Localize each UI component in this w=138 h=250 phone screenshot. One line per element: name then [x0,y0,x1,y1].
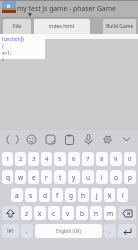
staticText: c [52,209,56,218]
staticText: 0 [128,155,132,163]
button[interactable]: !#1 [2,224,19,238]
button[interactable]: 3 [28,152,39,166]
staticText: 2 [19,155,23,163]
button[interactable]: g [65,188,76,202]
button[interactable]: 9 [110,152,122,166]
staticText: g [69,191,73,200]
button[interactable]: a [11,188,23,202]
button[interactable] [100,132,114,146]
staticText: o [114,173,118,182]
staticText: my test js game - phaser Game [17,4,116,13]
button[interactable]: 4 [41,152,52,166]
button[interactable] [119,132,133,146]
staticText: 6 [72,155,76,163]
staticText: v [66,209,70,218]
button[interactable]: l [117,188,128,202]
staticText: File [13,23,21,30]
staticText: z [25,209,29,218]
button[interactable]: q [2,170,13,184]
button[interactable]: h [78,188,89,202]
staticText: !#1 [7,228,14,234]
button[interactable]: p [124,170,136,184]
staticText: d [43,191,47,200]
button[interactable]: r [41,170,52,184]
staticText: i [101,173,103,182]
staticText: 3 [32,155,36,163]
staticText: } [2,57,4,61]
staticText: f [56,191,59,200]
button[interactable] [2,206,19,220]
button[interactable]: s [25,188,37,202]
staticText: x [38,209,42,218]
button[interactable] [118,206,136,220]
button[interactable]: j [91,188,102,202]
staticText: n [94,209,99,218]
staticText: 1 [6,155,10,163]
button[interactable]: 6 [68,152,80,166]
staticText: 4 [45,155,49,163]
staticText: q [6,173,10,182]
staticText: k [108,191,112,200]
button[interactable]: w [15,170,26,184]
staticText: index.html [49,23,75,30]
button[interactable] [81,132,95,146]
staticText: 8 [100,155,104,163]
staticText: { [2,43,4,50]
staticText: j [96,191,98,200]
staticText: 5 [58,155,62,163]
button[interactable]: English (UK) [35,224,102,238]
button[interactable]: 1 [2,152,13,166]
button[interactable]: 8 [96,152,108,166]
button[interactable]: c [48,206,60,220]
button[interactable]: t [54,170,66,184]
staticText: y [72,173,76,182]
staticText: 7 [86,155,90,163]
staticText: a [15,191,19,200]
button[interactable]: . [104,224,116,238]
button[interactable]: u [82,170,94,184]
button[interactable]: Build Game [103,19,136,34]
staticText: b [80,209,84,218]
button[interactable] [118,224,136,238]
button[interactable]: o [110,170,122,184]
button[interactable]: d [39,188,50,202]
button[interactable]: x [34,206,46,220]
staticText: w [18,173,24,182]
button[interactable]: 7 [82,152,94,166]
button[interactable] [24,132,38,146]
staticText: , [26,227,28,235]
button[interactable]: b [76,206,88,220]
button[interactable]: z [21,206,32,220]
button[interactable]: n [90,206,102,220]
staticText: m [107,209,114,218]
staticText: function() [2,36,24,43]
button[interactable] [5,132,19,146]
button[interactable]: m [104,206,116,220]
staticText: u [86,173,91,182]
staticText: x=1; [2,50,12,57]
staticText: Build Game [106,23,134,30]
button[interactable]: f [52,188,63,202]
button[interactable]: i [96,170,108,184]
button[interactable]: 5 [54,152,66,166]
staticText: h [81,191,86,200]
button[interactable]: y [68,170,80,184]
staticText: p [128,173,132,182]
staticText: r [45,173,48,182]
button[interactable]: e [28,170,39,184]
button[interactable] [43,132,57,146]
button[interactable]: index.html [34,19,90,34]
button[interactable]: 2 [15,152,26,166]
button[interactable]: File [3,19,31,34]
staticText: English (UK) [56,228,82,234]
staticText: s [29,191,33,200]
staticText: l [122,191,124,200]
staticText: 9 [114,155,118,163]
button[interactable]: v [62,206,74,220]
button[interactable]: function() [0,34,45,59]
button[interactable] [62,132,76,146]
button[interactable]: , [21,224,33,238]
button[interactable]: 0 [124,152,136,166]
staticText: t [59,173,62,182]
button[interactable]: k [104,188,115,202]
